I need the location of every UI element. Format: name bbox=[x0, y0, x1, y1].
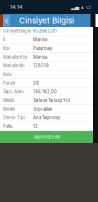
staticText: Mahalle No bbox=[3, 63, 25, 68]
staticText: 128319 bbox=[33, 63, 49, 68]
staticText: 14:14 bbox=[10, 4, 22, 10]
staticText: Zemin Tipi bbox=[3, 115, 25, 120]
staticText: Manisa bbox=[33, 54, 47, 60]
staticText: Parsel bbox=[3, 80, 15, 86]
staticText: Cinsiyet Bilgisi bbox=[3, 28, 31, 34]
button[interactable]: Parsel bbox=[0, 79, 93, 88]
staticText: Pafta bbox=[3, 124, 12, 129]
button[interactable]: Mahalle No bbox=[0, 62, 93, 70]
button[interactable]: Zemin Tipi bbox=[0, 114, 93, 122]
staticText: Taşınmaz Ekle bbox=[33, 134, 60, 140]
staticText: Manisa bbox=[33, 37, 47, 42]
staticText: Ana Taşınmaz bbox=[33, 115, 60, 120]
staticText: Mevkii bbox=[3, 106, 15, 112]
staticText: Nitelik bbox=[3, 98, 14, 103]
button[interactable]: Ada bbox=[0, 70, 93, 79]
staticText: ‹ bbox=[4, 15, 8, 26]
button[interactable]: İlçe bbox=[0, 44, 93, 53]
button[interactable]: Nitelik bbox=[0, 96, 93, 105]
button[interactable]: Cinsiyet Bilgisi bbox=[0, 27, 93, 36]
button[interactable]: Pafta bbox=[0, 122, 93, 131]
button[interactable]: Mevkii bbox=[0, 105, 93, 114]
button[interactable]: İl bbox=[0, 36, 93, 44]
staticText: İlçe bbox=[3, 46, 9, 51]
staticText: Kuzeyli Lütfi bbox=[33, 28, 57, 34]
staticText: Cinsiyet Bilgisi bbox=[19, 16, 74, 25]
button[interactable]: Tapu Alanı bbox=[0, 88, 93, 96]
staticText: 12 bbox=[33, 124, 38, 129]
button[interactable]: Mahalle/Köy bbox=[0, 53, 93, 62]
staticText: 146.182,00 bbox=[33, 89, 57, 94]
staticText: Tarla ve Tarla içi Yol bbox=[33, 98, 70, 103]
staticText: Mahalle/Köy bbox=[3, 54, 27, 60]
staticText: ▂▄ ▴ ▭ bbox=[71, 4, 91, 10]
staticText: Pazarbaşı bbox=[33, 46, 52, 51]
staticText: 28 bbox=[33, 80, 39, 86]
button[interactable]: Taşınmaz Ekle bbox=[0, 131, 93, 143]
staticText: Tapu Alanı bbox=[3, 89, 24, 94]
button[interactable]: Back bbox=[3, 15, 10, 26]
staticText: Topraktan bbox=[33, 106, 53, 112]
staticText: Ada bbox=[3, 72, 11, 77]
staticText: İl bbox=[3, 37, 5, 42]
